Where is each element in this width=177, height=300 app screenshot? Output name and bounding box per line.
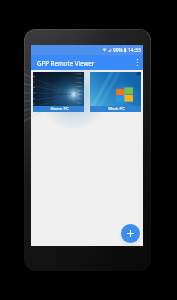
staticText: Work PC	[108, 106, 125, 112]
button[interactable]: More options	[132, 55, 143, 70]
button[interactable]: Work PC	[90, 72, 141, 112]
staticText: GPP Remote Viewer	[37, 59, 132, 67]
staticText: Home PC	[50, 106, 69, 112]
staticText: 14:33	[128, 47, 141, 54]
button[interactable]: Home PC	[33, 72, 84, 112]
button[interactable]: Add	[121, 224, 140, 243]
staticText: 99%	[113, 47, 123, 54]
